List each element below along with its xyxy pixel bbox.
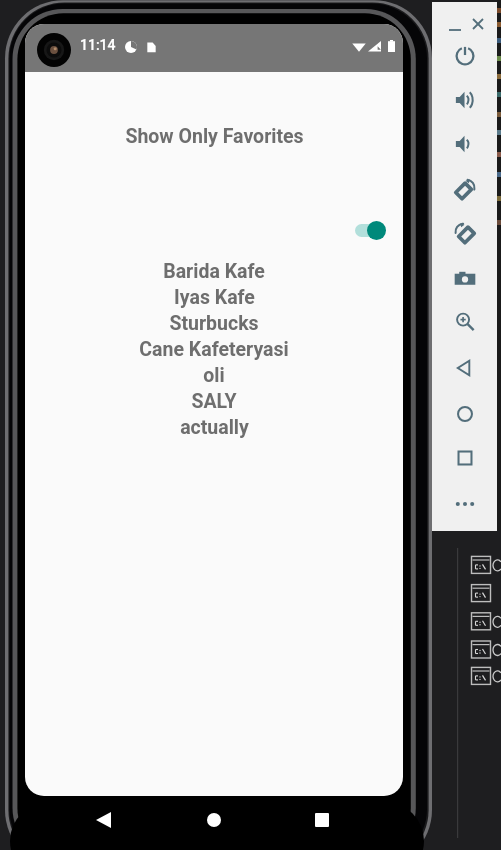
staticText: oli: [203, 364, 225, 387]
staticText: actually: [180, 416, 249, 439]
staticText: Barida Kafe: [163, 260, 265, 283]
button[interactable]: Back: [96, 812, 111, 828]
button[interactable]: actually: [25, 414, 403, 440]
button[interactable]: Minimize: [449, 24, 461, 36]
button[interactable]: Close: [472, 18, 484, 30]
button[interactable]: oli: [25, 362, 403, 388]
button[interactable]: Volume down: [432, 123, 497, 165]
button[interactable]: Iyas Kafe: [25, 284, 403, 310]
button[interactable]: Home: [432, 393, 497, 435]
button[interactable]: Volume up: [432, 79, 497, 121]
button[interactable]: More: [432, 483, 497, 525]
button[interactable]: Barida Kafe: [25, 258, 403, 284]
staticText: Iyas Kafe: [174, 286, 255, 309]
button[interactable]: Home: [207, 813, 221, 827]
button[interactable]: Rotate left: [432, 168, 497, 210]
button[interactable]: Power: [432, 35, 497, 77]
button[interactable]: Overview: [432, 437, 497, 479]
button[interactable]: Take screenshot: [432, 258, 497, 300]
staticText: Sturbucks: [169, 312, 259, 335]
button[interactable]: Rotate right: [432, 212, 497, 254]
staticText: Cane Kafeteryasi: [139, 338, 289, 361]
button[interactable]: Sturbucks: [25, 310, 403, 336]
button[interactable]: Back: [432, 347, 497, 389]
staticText: SALY: [191, 390, 237, 413]
button[interactable]: Recents: [315, 813, 329, 827]
button[interactable]: Show only favorites: [346, 209, 394, 243]
button[interactable]: Zoom: [432, 301, 497, 343]
button[interactable]: SALY: [25, 388, 403, 414]
button[interactable]: Show Only Favorites: [25, 125, 403, 148]
staticText: Show Only Favorites: [125, 125, 304, 148]
staticText: 11:14: [80, 37, 116, 53]
button[interactable]: Cane Kafeteryasi: [25, 336, 403, 362]
